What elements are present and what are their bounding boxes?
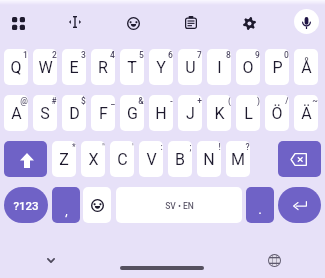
- staticText: 2: [52, 50, 57, 60]
- button[interactable]: Change language: [262, 248, 286, 272]
- staticText: $: [81, 96, 86, 106]
- staticText: 9: [255, 50, 260, 60]
- button[interactable]: ,: [52, 187, 80, 223]
- staticText: ~: [312, 96, 318, 106]
- staticText: Y: [156, 58, 166, 77]
- button[interactable]: R: [91, 49, 115, 85]
- staticText: N: [203, 150, 215, 169]
- staticText: Ä: [301, 104, 312, 123]
- staticText: 3: [81, 50, 86, 60]
- staticText: !: [218, 142, 221, 152]
- button[interactable]: A: [4, 95, 28, 131]
- staticText: +: [197, 96, 202, 106]
- button[interactable]: Å: [294, 49, 318, 85]
- button[interactable]: Backspace: [278, 141, 321, 177]
- button[interactable]: U: [178, 49, 202, 85]
- staticText: V: [146, 150, 157, 169]
- button[interactable]: T: [120, 49, 144, 85]
- staticText: M: [231, 150, 245, 169]
- button[interactable]: Z: [52, 141, 76, 177]
- button[interactable]: Y: [149, 49, 173, 85]
- button[interactable]: B: [168, 141, 192, 177]
- button[interactable]: K: [207, 95, 231, 131]
- button[interactable]: Emoji: [119, 9, 147, 37]
- button[interactable]: Shift: [4, 141, 47, 177]
- staticText: :: [160, 142, 163, 152]
- staticText: F: [99, 104, 108, 123]
- button[interactable]: S: [33, 95, 57, 131]
- staticText: O: [242, 58, 254, 77]
- button[interactable]: Voice input: [294, 9, 319, 34]
- staticText: Ö: [271, 104, 283, 123]
- staticText: Å: [301, 58, 312, 77]
- button[interactable]: M: [226, 141, 250, 177]
- staticText: G: [127, 104, 138, 123]
- button[interactable]: V: [139, 141, 163, 177]
- staticText: -: [170, 96, 173, 106]
- staticText: H: [155, 104, 167, 123]
- button[interactable]: Switch layout: [4, 9, 32, 37]
- button[interactable]: O: [236, 49, 260, 85]
- staticText: U: [185, 58, 196, 77]
- button[interactable]: Settings: [235, 9, 263, 37]
- button[interactable]: C: [110, 141, 134, 177]
- button[interactable]: Clipboard: [177, 8, 205, 36]
- staticText: .: [258, 203, 262, 217]
- button[interactable]: X: [81, 141, 105, 177]
- button[interactable]: J: [178, 95, 202, 131]
- staticText: 1: [23, 50, 28, 60]
- button[interactable]: F: [91, 95, 115, 131]
- button[interactable]: SV • EN: [116, 187, 242, 223]
- staticText: Q: [10, 58, 22, 77]
- button[interactable]: Ö: [265, 95, 289, 131]
- button[interactable]: H: [149, 95, 173, 131]
- button[interactable]: G: [120, 95, 144, 131]
- button[interactable]: D: [62, 95, 86, 131]
- staticText: L: [244, 104, 253, 123]
- staticText: A: [11, 104, 22, 123]
- button[interactable]: Emoji: [83, 187, 111, 223]
- button[interactable]: L: [236, 95, 260, 131]
- staticText: W: [38, 58, 53, 77]
- button[interactable]: Enter: [278, 187, 321, 223]
- button[interactable]: .: [246, 187, 274, 223]
- staticText: ?123: [13, 199, 39, 212]
- staticText: @: [20, 96, 28, 106]
- staticText: D: [69, 104, 80, 123]
- button[interactable]: Hide keyboard: [39, 248, 63, 272]
- button[interactable]: Ä: [294, 95, 318, 131]
- staticText: I: [217, 58, 222, 77]
- staticText: Z: [59, 150, 69, 169]
- staticText: 6: [168, 50, 173, 60]
- staticText: &: [138, 96, 144, 106]
- staticText: J: [186, 104, 195, 123]
- button[interactable]: Q: [4, 49, 28, 85]
- staticText: /: [285, 96, 289, 106]
- staticText: 5: [139, 50, 144, 60]
- button[interactable]: N: [197, 141, 221, 177]
- staticText: ': [132, 142, 134, 152]
- staticText: K: [214, 104, 225, 123]
- button[interactable]: I: [207, 49, 231, 85]
- staticText: (: [228, 96, 231, 106]
- staticText: #: [51, 96, 57, 106]
- staticText: ): [257, 96, 260, 106]
- button[interactable]: Move cursor: [61, 8, 89, 36]
- button[interactable]: W: [33, 49, 57, 85]
- staticText: SV • EN: [165, 201, 194, 211]
- button[interactable]: ?123: [4, 187, 48, 223]
- staticText: C: [117, 150, 128, 169]
- staticText: X: [88, 150, 99, 169]
- staticText: 0: [284, 50, 289, 60]
- button[interactable]: E: [62, 49, 86, 85]
- staticText: R: [98, 58, 108, 77]
- button[interactable]: P: [265, 49, 289, 85]
- staticText: T: [127, 58, 137, 77]
- staticText: E: [69, 58, 79, 77]
- staticText: B: [175, 150, 185, 169]
- staticText: ?: [245, 142, 250, 152]
- staticText: _: [111, 96, 115, 106]
- staticText: 8: [226, 50, 231, 60]
- staticText: *: [72, 142, 76, 152]
- staticText: 4: [110, 50, 115, 60]
